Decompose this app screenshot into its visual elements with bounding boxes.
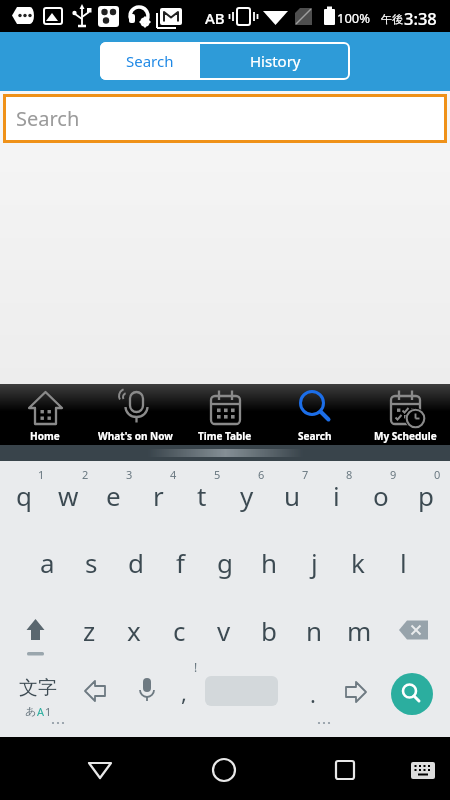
staticText: b (261, 613, 277, 648)
staticText: ! (194, 659, 198, 673)
staticText: 文字 (19, 676, 57, 700)
staticText: m (347, 613, 372, 648)
staticText: 午後 (381, 12, 403, 26)
staticText: 1 (38, 467, 45, 481)
staticText: 100% (337, 9, 371, 27)
button[interactable] (112, 737, 224, 800)
staticText: 9 (390, 467, 397, 481)
staticText: 7 (302, 467, 309, 481)
button[interactable]: Home (0, 384, 90, 445)
staticText: p (418, 478, 434, 513)
button[interactable]: What's on Now (90, 384, 180, 445)
staticText: d (128, 545, 144, 580)
staticText: t (197, 478, 207, 513)
button[interactable]: Time Table (180, 384, 270, 445)
button[interactable] (224, 737, 337, 800)
staticText: u (284, 478, 301, 513)
staticText: Search (16, 105, 80, 132)
staticText: History (250, 51, 301, 71)
staticText: n (306, 613, 323, 648)
staticText: 4 (170, 467, 177, 481)
staticText: v (217, 613, 231, 648)
staticText: l (400, 545, 407, 580)
staticText: i (333, 478, 340, 513)
button[interactable]: My Schedule (360, 384, 450, 445)
staticText: 3:38 (404, 7, 437, 29)
staticText: w (58, 478, 79, 513)
staticText: My Schedule (374, 429, 437, 443)
staticText: AB (205, 8, 225, 28)
staticText: 0 (434, 467, 441, 481)
staticText: j (311, 545, 318, 580)
button[interactable] (391, 673, 433, 715)
staticText: z (83, 613, 96, 648)
staticText: What's on Now (98, 429, 173, 443)
staticText: g (217, 545, 233, 580)
staticText: A (37, 704, 45, 718)
button[interactable]: Search (270, 384, 360, 445)
staticText: f (176, 545, 185, 580)
button[interactable]: Search (100, 42, 200, 80)
button[interactable]: Search (3, 94, 447, 143)
staticText: 6 (258, 467, 265, 481)
staticText: y (240, 478, 254, 513)
staticText: 1 (45, 704, 52, 718)
staticText: a (40, 545, 55, 580)
staticText: x (127, 613, 141, 648)
staticText: c (173, 613, 186, 648)
staticText: Home (30, 429, 60, 443)
staticText: 3 (126, 467, 133, 481)
button[interactable] (0, 737, 112, 800)
staticText: . (310, 679, 316, 709)
staticText: h (261, 545, 278, 580)
staticText: , (181, 677, 187, 707)
staticText: 8 (346, 467, 353, 481)
staticText: o (373, 478, 389, 513)
staticText: Time Table (198, 429, 252, 443)
staticText: 5 (214, 467, 221, 481)
button[interactable] (337, 737, 450, 800)
staticText: r (153, 478, 164, 513)
staticText: s (85, 545, 98, 580)
staticText: q (16, 478, 32, 513)
button[interactable]: History (200, 42, 350, 80)
staticText: あ (25, 704, 37, 718)
staticText: k (351, 545, 365, 580)
staticText: e (106, 478, 121, 513)
staticText: Search (126, 51, 174, 71)
staticText: Search (298, 429, 332, 443)
staticText: 2 (82, 467, 89, 481)
